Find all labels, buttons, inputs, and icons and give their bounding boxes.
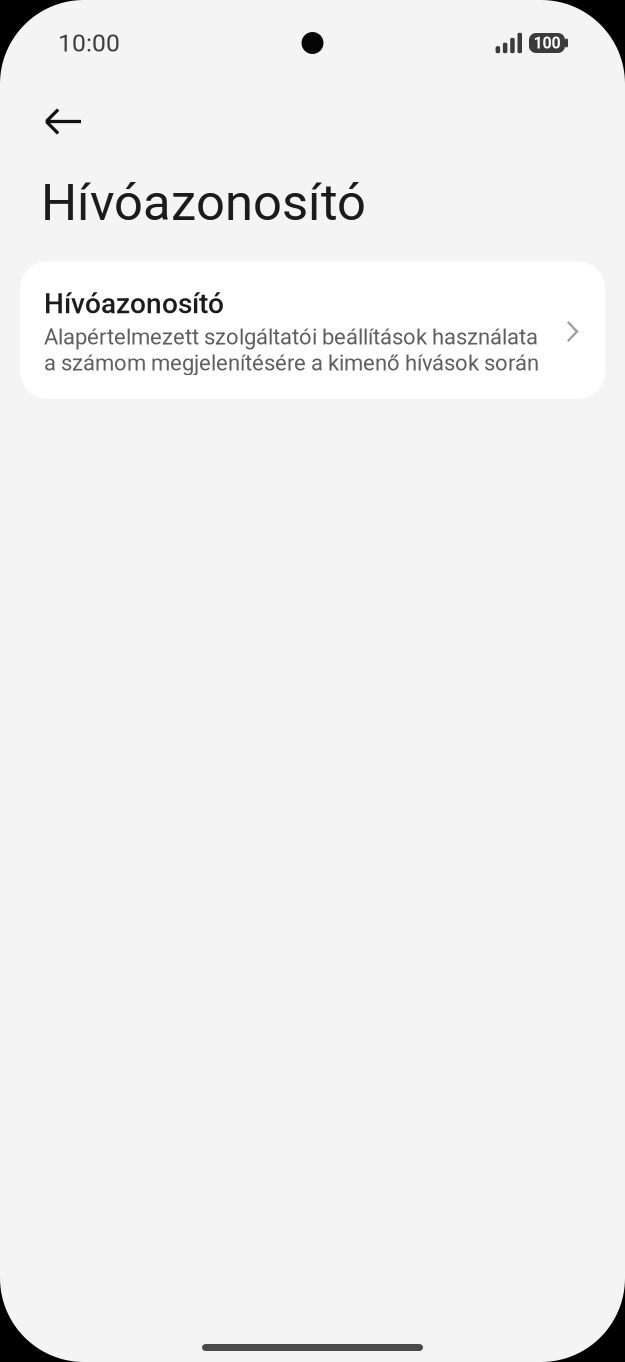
staticText: Alapértelmezett szolgáltatói beállítások…	[44, 324, 539, 376]
button[interactable]: Hívóazonosító	[20, 261, 605, 399]
staticText: 10:00	[58, 28, 120, 57]
staticText: Hívóazonosító	[41, 173, 366, 232]
staticText: 100	[533, 34, 560, 52]
staticText: Hívóazonosító	[44, 287, 224, 320]
button[interactable]: Back	[34, 93, 91, 150]
